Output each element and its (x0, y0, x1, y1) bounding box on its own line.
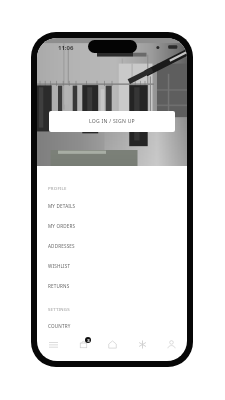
button[interactable]: RETURNS (48, 276, 187, 296)
button[interactable]: Home (101, 333, 123, 355)
staticText: WISHLIST (48, 263, 71, 269)
button[interactable]: WISHLIST (48, 256, 187, 276)
staticText: MY DETAILS (48, 203, 76, 209)
staticText: COUNTRY (48, 323, 71, 329)
staticText: ADDRESSES (48, 243, 75, 249)
button[interactable]: Menu (42, 333, 64, 355)
staticText: 3 (87, 338, 90, 343)
staticText: MY ORDERS (48, 223, 76, 229)
button[interactable]: MY DETAILS (48, 196, 187, 216)
button[interactable]: LOG IN / SIGN UP (49, 111, 175, 132)
button[interactable]: Bag (72, 333, 94, 355)
staticText: RETURNS (48, 283, 70, 289)
staticText: 11:06 (58, 44, 74, 52)
button[interactable]: Offers (131, 333, 153, 355)
button[interactable]: Account (160, 333, 182, 355)
staticText: SETTINGS (48, 306, 70, 312)
staticText: LOG IN / SIGN UP (89, 118, 135, 125)
button[interactable]: ADDRESSES (48, 236, 187, 256)
button[interactable]: COUNTRY (48, 316, 187, 336)
staticText: PROFILE (48, 185, 67, 191)
button[interactable]: MY ORDERS (48, 216, 187, 236)
